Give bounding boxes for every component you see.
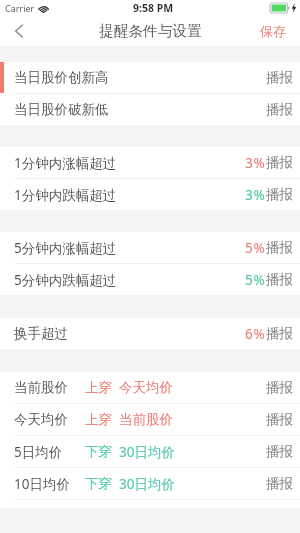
button[interactable]: 保存 [250, 16, 300, 46]
staticText: 当前股价 [14, 379, 68, 396]
staticText: 播报 [266, 411, 293, 428]
staticText: 5% [245, 271, 266, 289]
staticText: 上穿 [85, 379, 112, 396]
staticText: 当日股价破新低 [14, 101, 109, 118]
staticText: 播报 [266, 69, 293, 86]
staticText: 9:58 PM [133, 1, 174, 15]
button[interactable]: 当前股价 [0, 372, 300, 403]
button[interactable]: 返回 [0, 16, 38, 46]
button[interactable]: 5分钟内跌幅超过 [0, 264, 300, 295]
staticText: 播报 [266, 101, 293, 118]
staticText: 播报 [266, 443, 293, 460]
staticText: 提醒条件与设置 [99, 22, 202, 41]
staticText: 10日均价 [14, 475, 70, 493]
staticText: 当日股价创新高 [14, 69, 109, 86]
button[interactable]: 换手超过 [0, 318, 300, 349]
button[interactable]: 今天均价 [0, 404, 300, 435]
button[interactable]: 当日股价破新低 [0, 94, 300, 125]
staticText: Carrier [5, 2, 35, 14]
staticText: 换手超过 [14, 325, 68, 342]
staticText: 播报 [266, 154, 293, 171]
staticText: 1分钟内涨幅超过 [14, 154, 117, 172]
staticText: 3% [245, 186, 266, 204]
staticText: 今天均价 [14, 411, 68, 428]
staticText: 30日均价 [119, 475, 175, 493]
staticText: 保存 [260, 23, 286, 39]
staticText: 下穿 [85, 443, 112, 460]
staticText: 3% [245, 154, 266, 172]
staticText: 5分钟内跌幅超过 [14, 271, 117, 289]
button[interactable]: 5日均价 [0, 436, 300, 467]
staticText: 今天均价 [119, 379, 173, 396]
staticText: 播报 [266, 271, 293, 288]
staticText: 播报 [266, 186, 293, 203]
button[interactable]: 10日均价 [0, 468, 300, 499]
staticText: 上穿 [85, 411, 112, 428]
staticText: 播报 [266, 379, 293, 396]
staticText: 播报 [266, 325, 293, 342]
button[interactable]: 当日股价创新高 [0, 62, 300, 93]
button[interactable]: 1分钟内涨幅超过 [0, 147, 300, 178]
button[interactable]: 5分钟内涨幅超过 [0, 232, 300, 263]
staticText: 30日均价 [119, 443, 175, 461]
staticText: 播报 [266, 239, 293, 256]
staticText: 5分钟内涨幅超过 [14, 239, 117, 257]
staticText: 1分钟内跌幅超过 [14, 186, 117, 204]
staticText: 当前股价 [119, 411, 173, 428]
button[interactable]: 1分钟内跌幅超过 [0, 179, 300, 210]
staticText: 下穿 [85, 475, 112, 492]
staticText: 5日均价 [14, 443, 63, 461]
staticText: 播报 [266, 475, 293, 492]
staticText: 6% [245, 325, 266, 343]
staticText: 5% [245, 239, 266, 257]
